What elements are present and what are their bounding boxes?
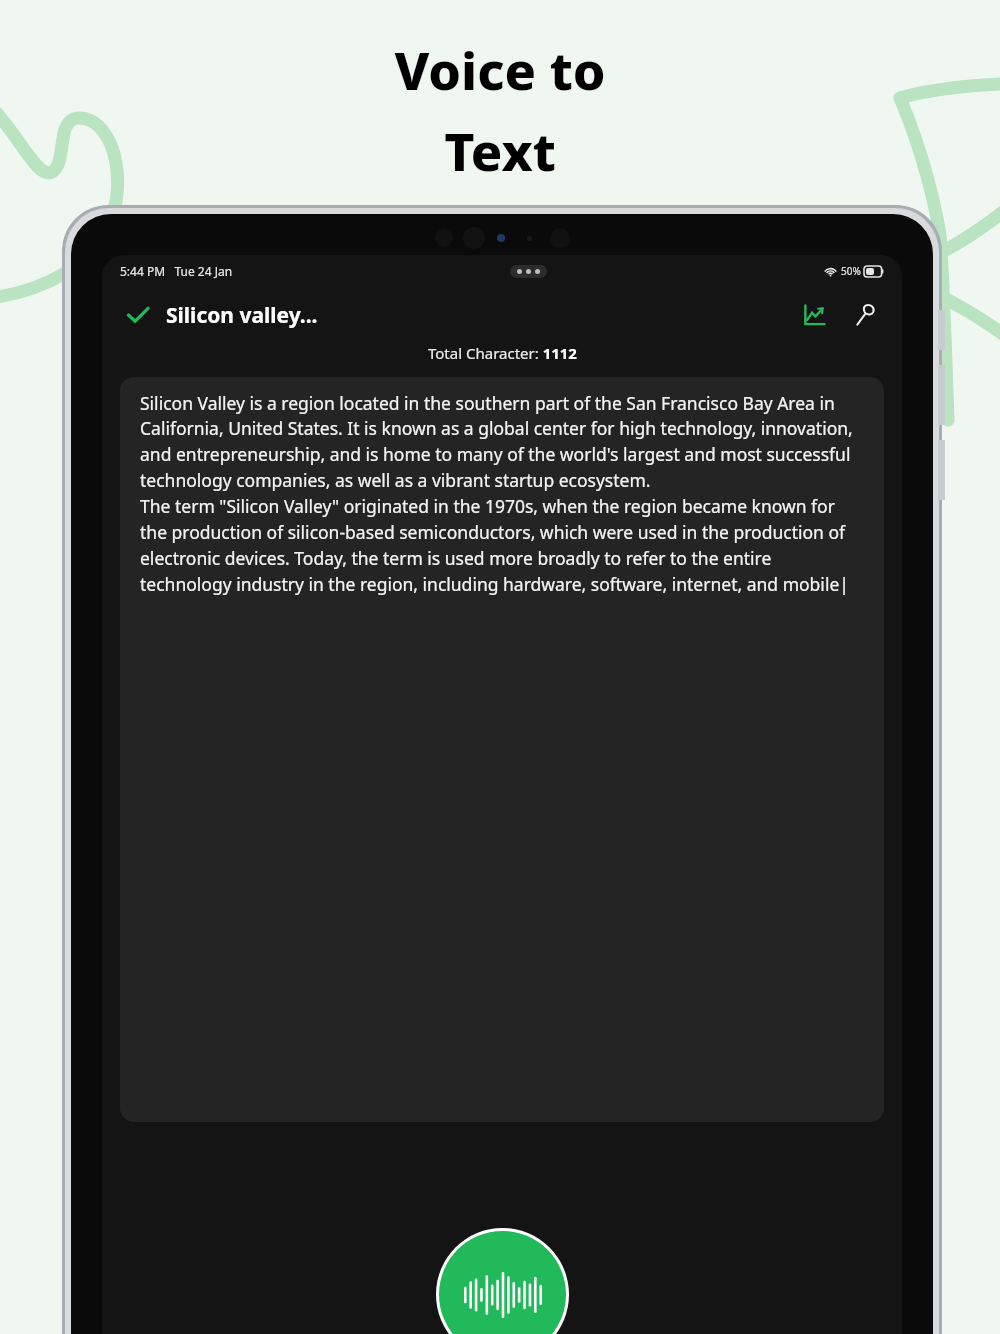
- button[interactable]: Record voice: [439, 1231, 566, 1334]
- button[interactable]: Silicon Valley is a region located in th…: [120, 377, 884, 1122]
- staticText: Text: [444, 115, 556, 186]
- staticText: Voice to: [394, 34, 606, 105]
- staticText: 50%: [841, 264, 861, 278]
- staticText: Silicon Valley is a region located in th…: [140, 391, 864, 597]
- staticText: Total Character: 1112: [428, 343, 577, 363]
- button[interactable]: Done: [118, 295, 158, 335]
- button[interactable]: Statistics: [794, 295, 834, 335]
- staticText: Silicon valley...: [166, 301, 318, 330]
- button[interactable]: Pin: [846, 295, 886, 335]
- staticText: 5:44 PM Tue 24 Jan: [120, 263, 233, 279]
